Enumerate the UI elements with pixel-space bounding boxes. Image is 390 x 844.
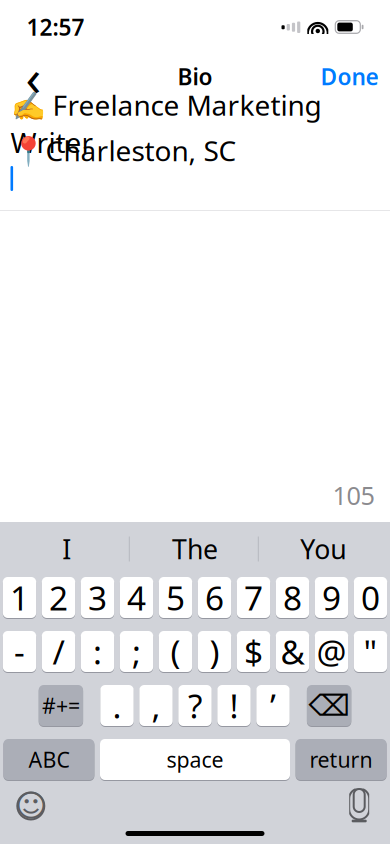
staticText: 📍Charleston, SC [10,132,236,169]
staticText: 3 [88,575,107,620]
button[interactable]: space [100,738,290,781]
button[interactable]: ) [198,630,231,673]
button[interactable]: , [139,684,173,727]
button[interactable]: @ [315,630,348,673]
staticText: ABC [28,745,69,774]
button[interactable]: ABC [3,738,94,781]
button[interactable]: ! [217,684,251,727]
staticText: 9 [322,575,341,620]
button[interactable]: I [3,522,131,576]
button[interactable]: Delete [307,684,351,727]
staticText: You [300,531,346,567]
button[interactable]: You [259,522,387,576]
button[interactable]: 6 [198,576,231,619]
staticText: 5 [166,575,185,620]
staticText: ! [229,683,238,728]
button[interactable]: Done [320,54,378,98]
staticText: ’ [270,683,276,728]
button[interactable]: / [42,630,75,673]
button[interactable]: #+= [39,684,83,727]
staticText: ‹ [25,43,41,110]
button[interactable]: 0 [354,576,387,619]
staticText: , [151,683,160,728]
staticText: ☺ [15,789,47,823]
button[interactable]: 9 [315,576,348,619]
staticText: ⌫ [309,689,350,722]
staticText: 7 [244,575,263,620]
staticText: return [310,745,373,774]
staticText: ) [209,629,219,674]
staticText: . [112,683,121,728]
button[interactable]: 4 [120,576,153,619]
button[interactable]: $ [237,630,270,673]
staticText: I [62,531,71,567]
staticText: / [52,629,64,674]
staticText: $ [244,629,263,674]
button[interactable]: 1 [3,576,36,619]
staticText: & [280,629,304,674]
staticText: ( [170,629,180,674]
staticText: : [93,629,102,674]
button[interactable]: Back [11,54,55,98]
button[interactable]: Emoji keyboard [9,784,53,828]
button[interactable]: & [276,630,309,673]
staticText: 4 [127,575,146,620]
staticText: 8 [283,575,302,620]
button[interactable]: - [3,630,36,673]
button[interactable]: ’ [256,684,290,727]
button[interactable]: 8 [276,576,309,619]
staticText: Done [320,61,378,91]
button[interactable]: : [81,630,114,673]
button[interactable]: 5 [159,576,192,619]
button[interactable]: The [131,522,259,576]
staticText: space [166,745,223,774]
staticText: The [172,531,218,567]
button[interactable]: 7 [237,576,270,619]
button[interactable]: ✍️ Freelance Marketing Writer [0,99,390,210]
staticText: 0 [361,575,380,620]
button[interactable]: ( [159,630,192,673]
button[interactable]: " [354,630,387,673]
staticText: 12:57 [26,12,84,42]
staticText: @ [316,629,346,674]
button[interactable]: 3 [81,576,114,619]
button[interactable]: . [100,684,134,727]
button[interactable]: 2 [42,576,75,619]
button[interactable]: return [296,738,387,781]
staticText: - [14,629,25,674]
staticText: " [363,629,377,674]
staticText: 105 [332,478,374,512]
button[interactable]: Dictation [337,784,381,828]
button[interactable]: ; [120,630,153,673]
button[interactable]: ? [178,684,212,727]
staticText: #+= [42,691,80,720]
staticText: ; [132,629,141,674]
staticText: 2 [49,575,68,620]
staticText: ✍️ Freelance Marketing Writer [10,86,321,161]
staticText: 6 [205,575,224,620]
staticText: 1 [10,575,29,620]
staticText: ? [188,683,202,728]
staticText: Bio [177,61,212,91]
